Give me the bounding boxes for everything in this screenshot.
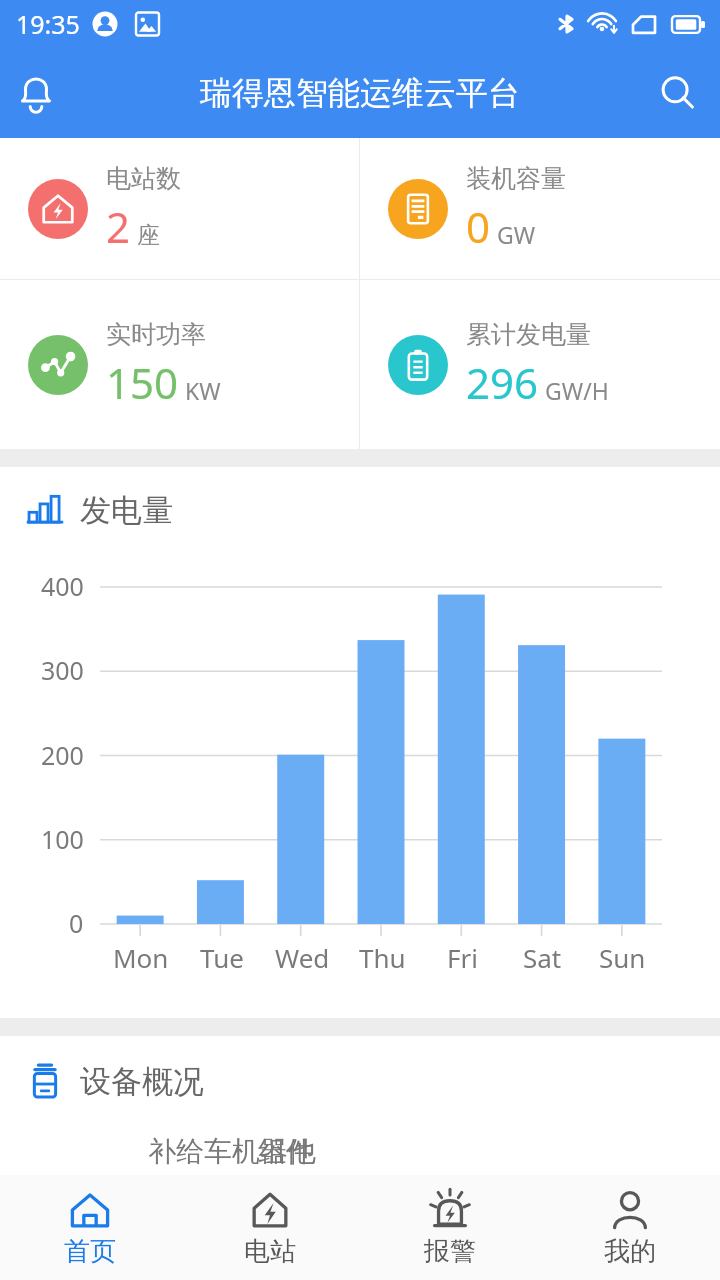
staticText: 设备概况 [80,1062,204,1101]
staticText: Sat [523,940,562,975]
staticText: 100 [41,822,84,856]
staticText: 296 [466,354,539,411]
button[interactable]: 累计发电量 [360,280,720,449]
staticText: Fri [447,940,478,975]
staticText: 2 [106,198,131,255]
staticText: 我的 [604,1235,656,1268]
staticText: 400 [41,569,84,603]
staticText: 瑞得恩智能运维云平台 [200,73,520,113]
staticText: Wed [275,940,330,975]
staticText: 发电量 [80,491,173,530]
button[interactable]: 装机容量 [360,138,720,279]
staticText: Sun [599,940,646,975]
staticText: 首页 [64,1235,116,1268]
staticText: 报警 [424,1235,476,1268]
staticText: Thu [359,940,406,975]
staticText: 150 [106,354,179,411]
staticText: 组件 [258,1134,314,1169]
button[interactable]: Notifications [6,63,66,123]
staticText: KW [185,375,221,406]
staticText: 19:35 [16,7,80,41]
staticText: 补给车机器他 [148,1134,316,1169]
button[interactable]: Search [648,63,708,123]
staticText: 累计发电量 [466,319,591,350]
button[interactable]: 首页 [0,1175,180,1280]
button[interactable]: 报警 [360,1175,540,1280]
staticText: 0 [69,906,84,940]
staticText: 200 [41,738,84,772]
staticText: 0 [466,198,491,255]
button[interactable]: 电站数 [0,138,359,279]
staticText: 电站数 [106,163,181,194]
staticText: 装机容量 [466,163,566,194]
staticText: 300 [41,653,84,687]
staticText: Mon [113,940,169,975]
staticText: 座 [137,221,160,250]
staticText: Tue [200,940,244,975]
staticText: 电站 [244,1235,296,1268]
button[interactable]: 实时功率 [0,280,359,449]
button[interactable]: 电站 [180,1175,360,1280]
staticText: GW [497,219,536,250]
staticText: 实时功率 [106,319,206,350]
staticText: GW/H [545,375,609,406]
button[interactable]: 我的 [540,1175,720,1280]
